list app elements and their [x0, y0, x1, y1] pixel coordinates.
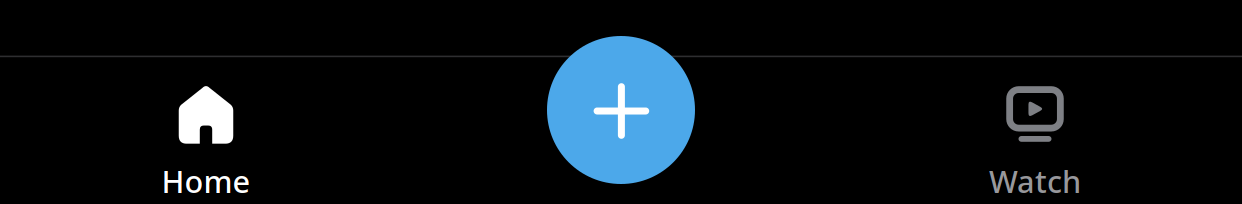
button[interactable]: Home	[0, 56, 414, 204]
button[interactable]: Compose	[547, 36, 695, 184]
staticText: Watch	[989, 161, 1081, 201]
button[interactable]: Watch	[828, 56, 1242, 204]
staticText: Home	[161, 161, 250, 201]
